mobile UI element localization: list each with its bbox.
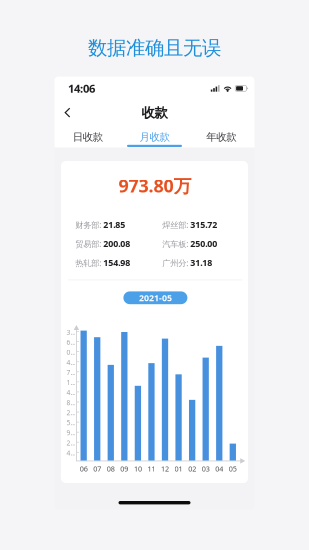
button[interactable]: 2021-05 (123, 291, 187, 304)
staticText: 2… (66, 408, 75, 417)
staticText: 焊丝部: (162, 219, 188, 230)
staticText: 年收款 (206, 130, 236, 144)
staticText: 05 (229, 464, 237, 474)
staticText: 09 (120, 464, 128, 474)
staticText: 10 (134, 464, 142, 474)
staticText: 广州分: (162, 257, 188, 269)
staticText: 250.00 (190, 237, 217, 249)
staticText: 07 (93, 464, 101, 474)
staticText: 2… (66, 438, 75, 447)
staticText: 日收款 (73, 130, 103, 144)
button[interactable]: Back (59, 101, 81, 123)
staticText: 200.08 (103, 237, 130, 249)
staticText: 4… (66, 448, 75, 457)
staticText: 01 (175, 464, 183, 474)
staticText: 6… (66, 338, 75, 347)
staticText: 9… (66, 428, 75, 437)
staticText: 8… (66, 398, 75, 407)
staticText: 315.72 (190, 218, 217, 230)
staticText: 31.18 (190, 257, 212, 269)
staticText: 06 (80, 464, 88, 474)
staticText: 数据准确且无误 (88, 36, 221, 60)
staticText: 4… (66, 388, 75, 397)
staticText: 02 (188, 464, 196, 474)
button[interactable]: 月收款 (121, 130, 188, 147)
staticText: 5… (66, 418, 75, 427)
staticText: 21.85 (103, 218, 125, 230)
staticText: 0… (66, 348, 75, 357)
staticText: 财务部: (75, 219, 101, 230)
button[interactable]: 年收款 (188, 130, 254, 147)
staticText: 973.80万 (118, 173, 191, 198)
staticText: 汽车板: (162, 238, 188, 249)
staticText: 3… (66, 328, 75, 337)
staticText: 1… (66, 378, 75, 387)
staticText: 热轧部: (75, 257, 101, 269)
staticText: 12 (161, 464, 169, 474)
staticText: 4… (66, 358, 75, 367)
button[interactable]: 日收款 (54, 130, 121, 147)
staticText: 月收款 (139, 130, 169, 144)
staticText: 11 (147, 464, 155, 474)
staticText: 7… (66, 368, 75, 377)
staticText: 收款 (141, 104, 167, 121)
staticText: 14:06 (68, 81, 95, 96)
staticText: 04 (215, 464, 223, 474)
staticText: 2021-05 (139, 292, 172, 304)
staticText: 08 (107, 464, 115, 474)
staticText: 154.98 (103, 257, 130, 269)
staticText: 贸易部: (75, 238, 101, 249)
staticText: 03 (202, 464, 210, 474)
